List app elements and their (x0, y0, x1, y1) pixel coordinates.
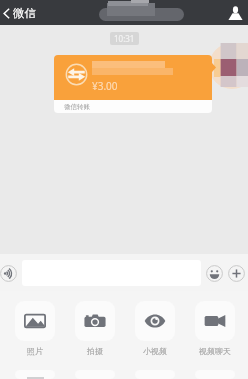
staticText: 小视频 (143, 346, 167, 356)
button[interactable]: 照片 (5, 301, 65, 356)
button[interactable]: Voice message (0, 262, 19, 284)
staticText: 微信 (13, 6, 36, 20)
button[interactable]: More options (225, 262, 247, 284)
button[interactable]: 拍摄 (65, 301, 125, 356)
button[interactable]: 视频聊天 (185, 301, 245, 356)
staticText: ¥3.00 (92, 79, 118, 93)
button[interactable]: Emoji (203, 262, 225, 284)
button[interactable]: ¥3.00 (54, 55, 212, 113)
staticText: 视频聊天 (199, 346, 231, 356)
staticText: 微信转账 (64, 103, 90, 111)
button[interactable]: Chat info (222, 0, 248, 25)
staticText: 10:31 (114, 33, 135, 44)
button[interactable]: Back to 微信 (0, 3, 42, 23)
button[interactable]: Option 5 (15, 370, 55, 379)
button[interactable]: 小视频 (125, 301, 185, 356)
staticText: 拍摄 (87, 346, 103, 356)
staticText: 照片 (27, 346, 43, 356)
